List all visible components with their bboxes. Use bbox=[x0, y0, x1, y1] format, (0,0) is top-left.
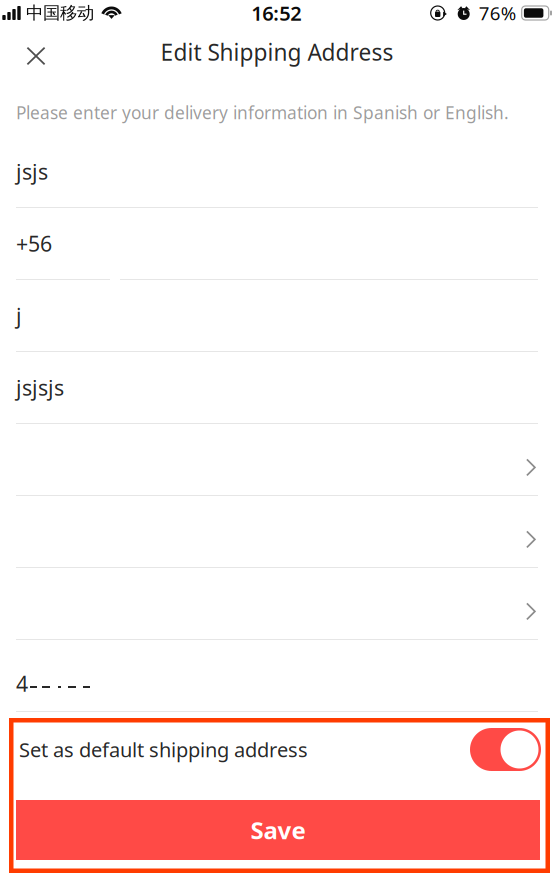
staticText: 16:52 bbox=[251, 0, 301, 26]
staticText: 4 bbox=[16, 669, 28, 698]
staticText: Edit Shipping Address bbox=[160, 37, 393, 67]
staticText: jsjs bbox=[16, 157, 48, 186]
staticText: Set as default shipping address bbox=[19, 736, 308, 763]
button[interactable]: Choose bbox=[0, 424, 554, 496]
button[interactable]: Save bbox=[16, 800, 540, 860]
staticText: 76% bbox=[479, 1, 517, 25]
button[interactable]: Close bbox=[10, 26, 62, 78]
staticText: 中国移动 bbox=[26, 2, 94, 24]
staticText: +56 bbox=[16, 229, 52, 258]
staticText: Save bbox=[250, 814, 305, 846]
staticText: Please enter your delivery information i… bbox=[16, 101, 509, 124]
button[interactable]: Choose bbox=[0, 568, 554, 640]
staticText: jsjsjs bbox=[16, 373, 64, 402]
staticText: j bbox=[16, 301, 22, 330]
button[interactable]: Choose bbox=[0, 496, 554, 568]
